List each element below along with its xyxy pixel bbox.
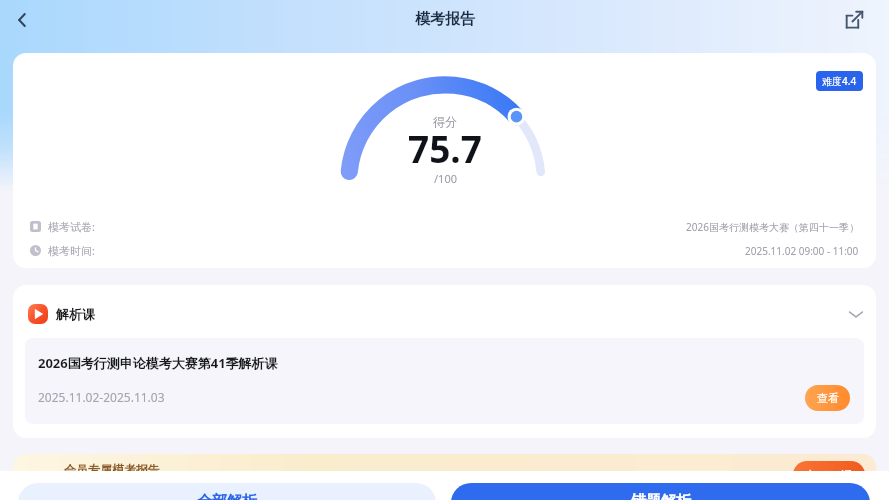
button[interactable]: 错题解析 xyxy=(451,483,870,500)
button[interactable]: Share xyxy=(837,2,871,36)
button[interactable]: 全部解析 xyxy=(18,483,436,500)
staticText: 2025.11.02-2025.11.03 xyxy=(38,389,165,405)
staticText: 得分 xyxy=(433,114,457,129)
staticText: /100 xyxy=(434,171,457,186)
button[interactable]: 查看 xyxy=(805,385,850,411)
staticText: 模考试卷: xyxy=(48,219,95,234)
button[interactable]: Back xyxy=(2,0,42,40)
button[interactable]: 难度4.4 xyxy=(816,71,863,91)
staticText: 会员专属模考报告 xyxy=(64,462,160,477)
staticText: 全部解析 xyxy=(197,492,257,500)
staticText: 模考时间: xyxy=(48,243,95,258)
staticText: 模考报告 xyxy=(415,10,475,29)
staticText: 解析课 xyxy=(56,306,95,322)
staticText: 查看 xyxy=(817,391,839,405)
staticText: 2026国考行测模考大赛（第四十一季） xyxy=(686,220,859,234)
button[interactable]: 解析课 xyxy=(13,285,876,338)
staticText: 立即开通 xyxy=(805,468,853,483)
staticText: 错题解析 xyxy=(631,492,691,500)
button[interactable]: 会员专属模考报告 xyxy=(13,454,876,500)
staticText: 2026国考行测申论模考大赛第41季解析课 xyxy=(38,354,278,372)
button[interactable]: Expand xyxy=(840,298,872,330)
staticText: 2025.11.02 09:00 - 11:00 xyxy=(745,244,859,258)
staticText: 75.7 xyxy=(408,123,482,173)
button[interactable]: 立即开通 xyxy=(793,461,865,489)
staticText: 难度4.4 xyxy=(822,74,857,88)
button[interactable]: 2026国考行测申论模考大赛第41季解析课 xyxy=(25,338,864,424)
